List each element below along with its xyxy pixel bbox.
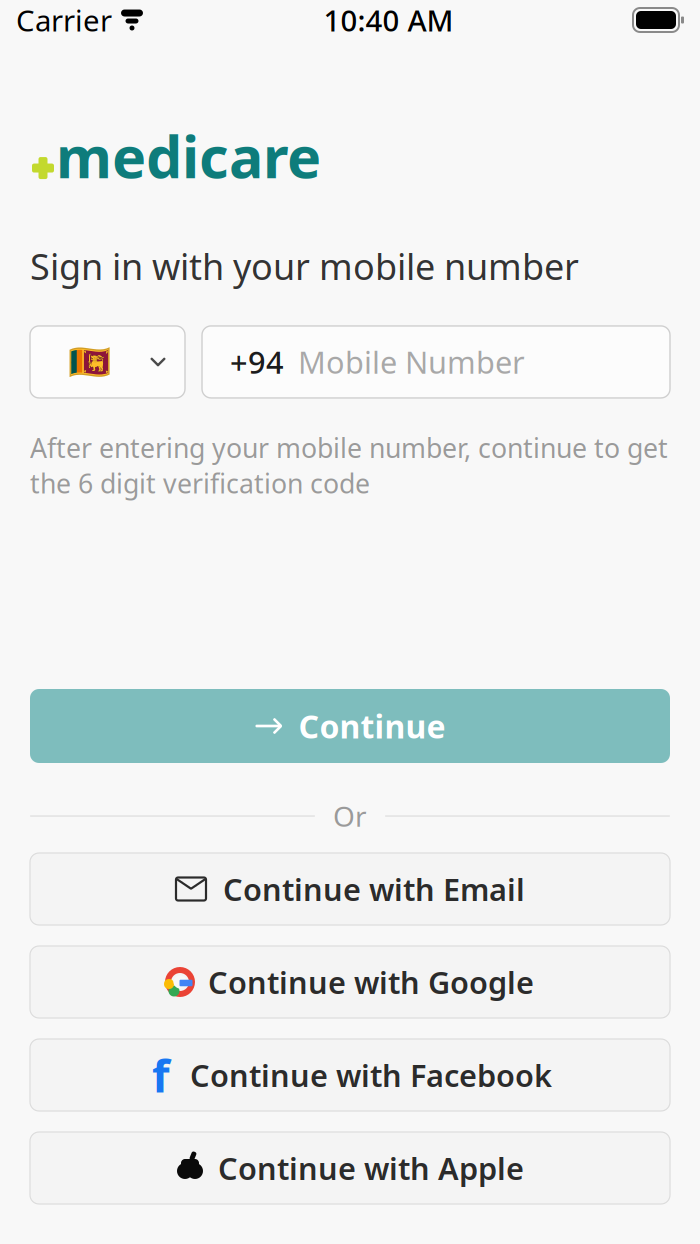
button[interactable]: Select country code: [30, 326, 185, 398]
staticText: Mobile Number: [298, 342, 525, 382]
button[interactable]: f: [30, 1039, 670, 1111]
staticText: Carrier: [16, 0, 112, 39]
staticText: After entering your mobile number, conti…: [30, 430, 668, 501]
staticText: medicare: [56, 118, 321, 194]
staticText: +94: [230, 342, 284, 382]
button[interactable]: Continue with Email: [30, 853, 670, 925]
staticText: 10:40 AM: [323, 0, 453, 39]
staticText: Continue with Apple: [218, 1148, 524, 1188]
staticText: Or: [333, 797, 367, 835]
staticText: 🇱🇰: [68, 342, 111, 382]
button[interactable]: +94: [202, 326, 670, 398]
button[interactable]: Continue with Google: [30, 946, 670, 1018]
staticText: Continue with Google: [208, 962, 534, 1002]
staticText: Sign in with your mobile number: [30, 242, 579, 290]
staticText: Continue with Facebook: [190, 1055, 552, 1095]
staticText: Continue with Email: [223, 869, 525, 909]
staticText: f: [152, 1045, 170, 1105]
button[interactable]: Continue with Apple: [30, 1132, 670, 1204]
button[interactable]: Continue: [30, 689, 670, 763]
staticText: Continue: [298, 705, 445, 747]
